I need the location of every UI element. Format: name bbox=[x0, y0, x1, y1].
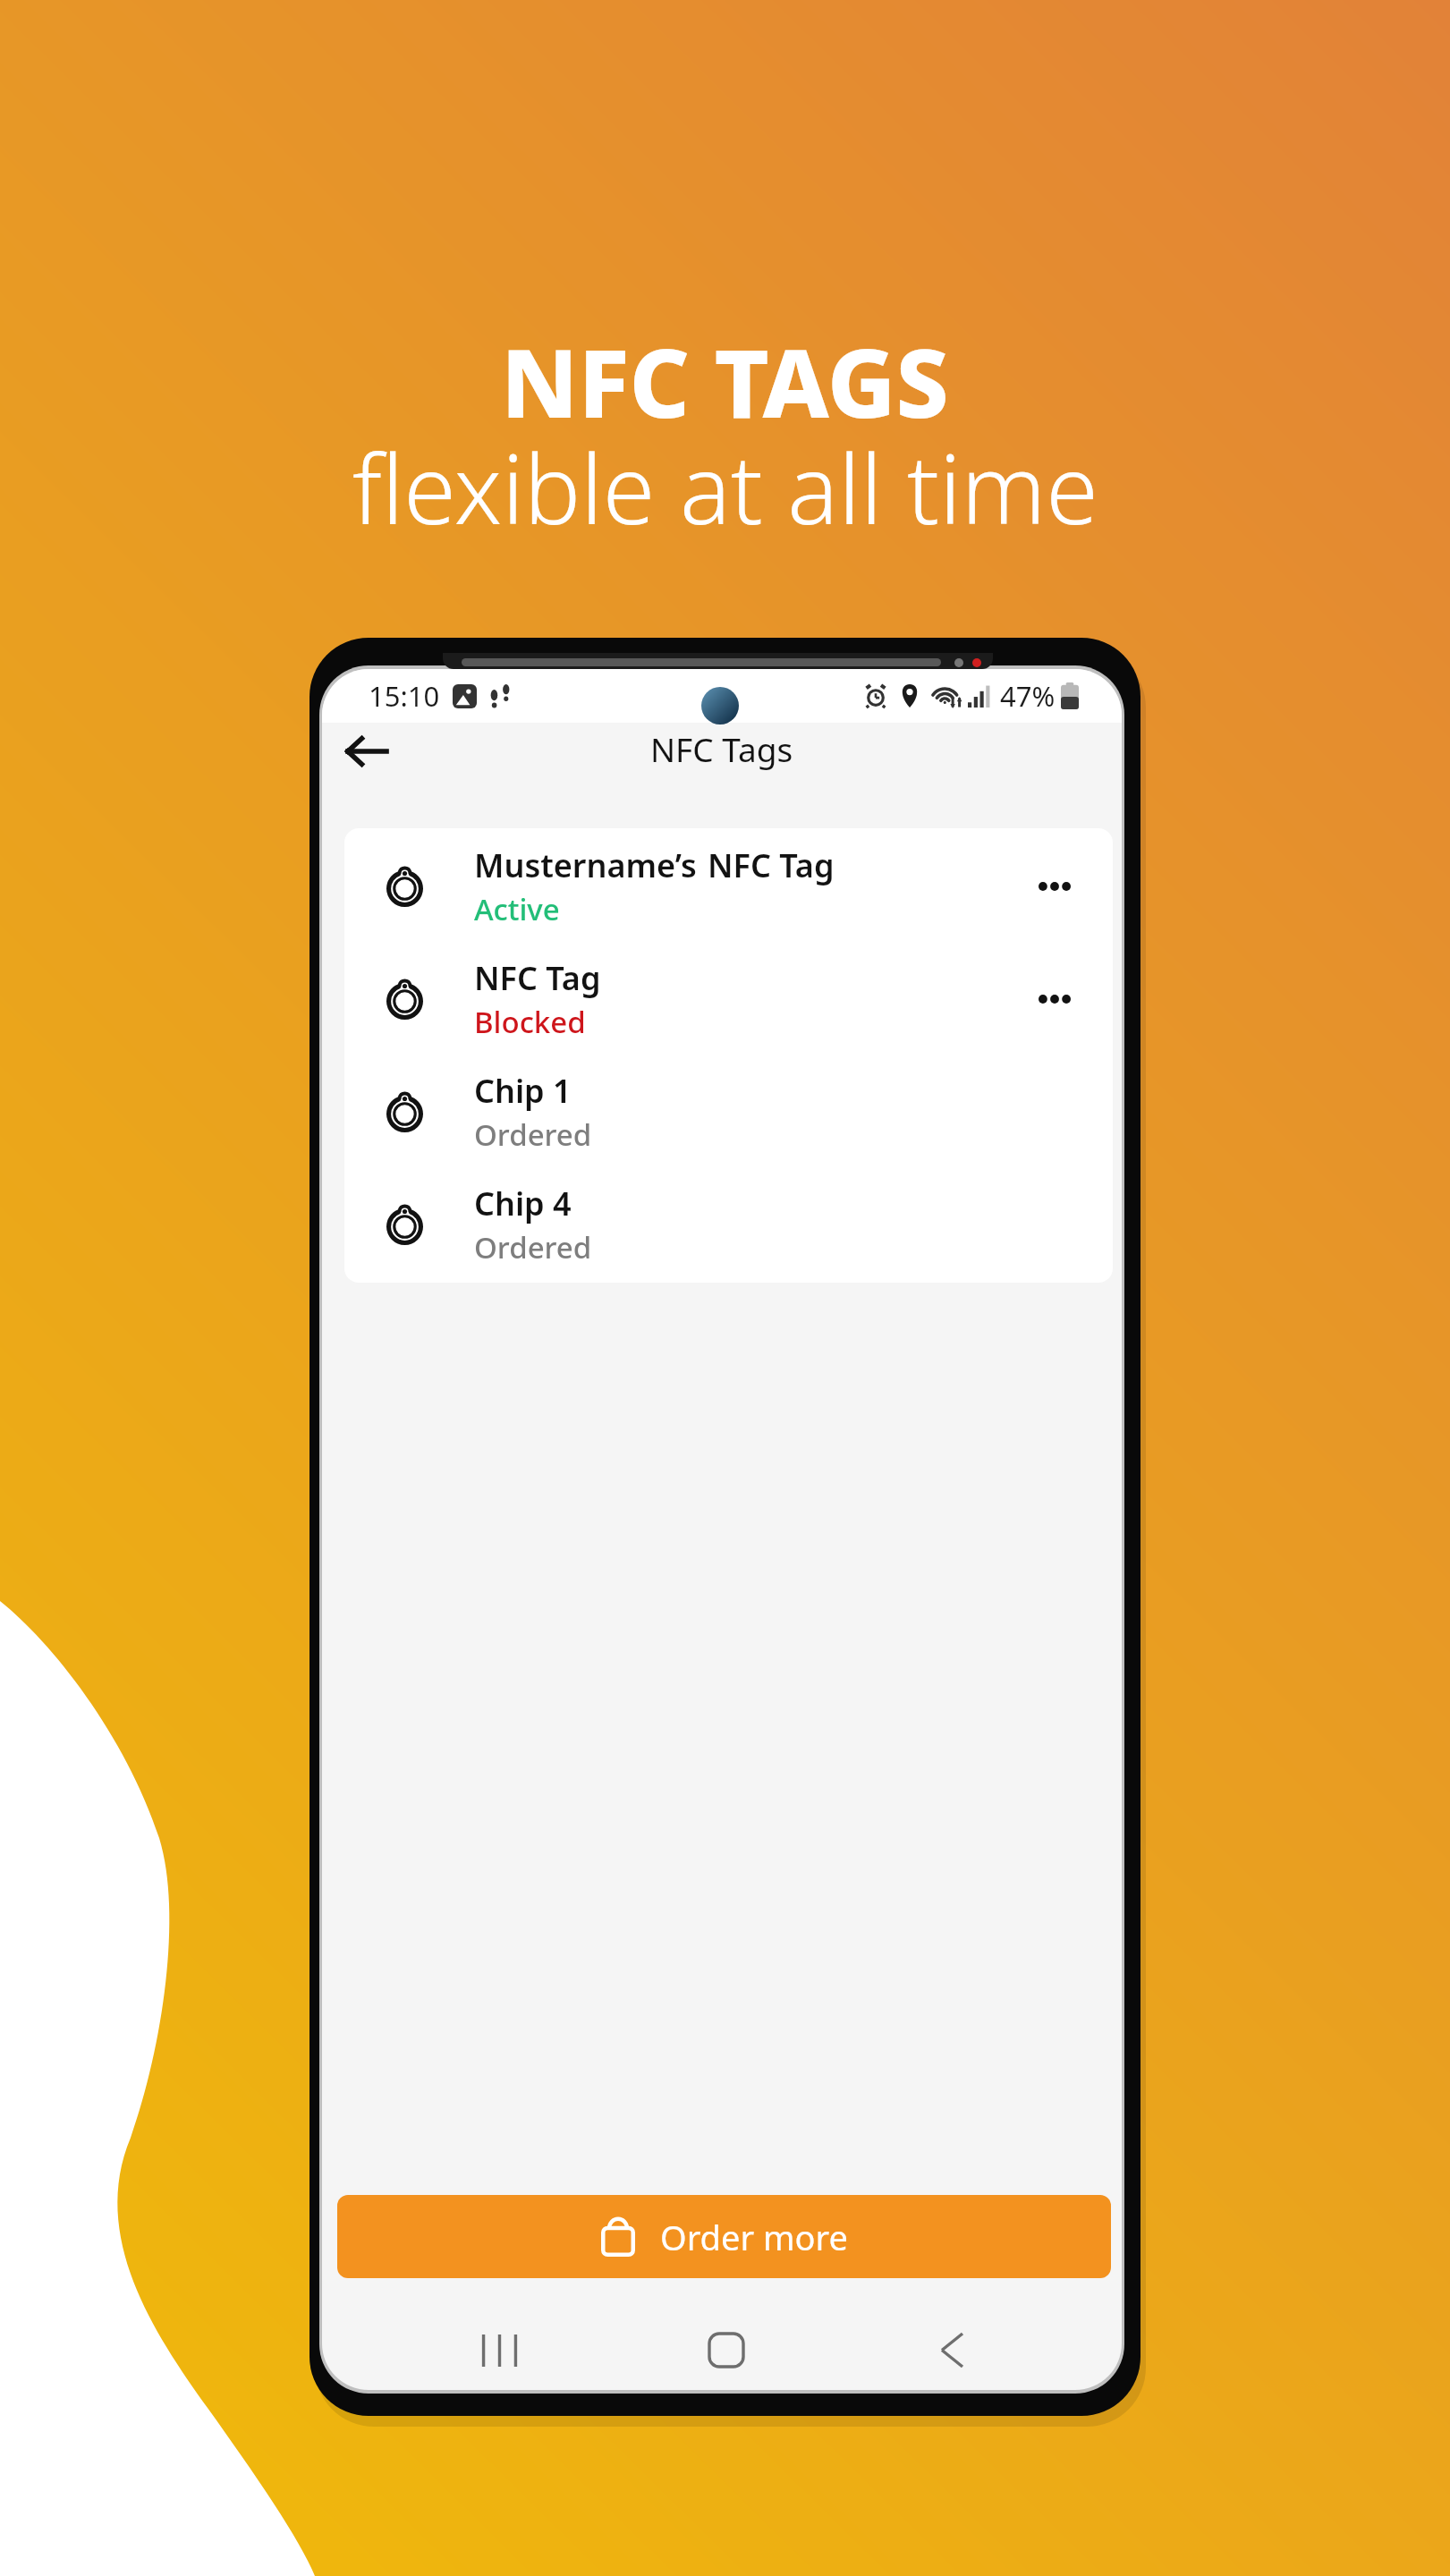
staticText: Ordered bbox=[474, 1227, 592, 1267]
button[interactable]: Order more bbox=[337, 2195, 1111, 2278]
button[interactable]: Chip 4 bbox=[344, 1168, 1113, 1281]
staticText: Chip 1 bbox=[474, 1069, 572, 1113]
staticText: Order more bbox=[660, 2214, 848, 2260]
staticText: Active bbox=[474, 889, 560, 929]
staticText: flexible at all time bbox=[352, 423, 1098, 552]
staticText: 47% bbox=[1000, 677, 1056, 715]
button[interactable]: Home bbox=[673, 2296, 780, 2390]
button[interactable]: More options bbox=[1027, 859, 1082, 914]
button[interactable]: Recents bbox=[445, 2296, 553, 2390]
button[interactable]: Mustername’s bbox=[344, 830, 1113, 943]
button[interactable]: Back bbox=[338, 723, 395, 780]
button[interactable]: More options bbox=[1027, 971, 1082, 1027]
staticText: Mustername’s bbox=[474, 843, 697, 887]
staticText: NFC Tags bbox=[650, 726, 793, 771]
staticText: Ordered bbox=[474, 1114, 592, 1155]
button[interactable]: Chip 1 bbox=[344, 1055, 1113, 1168]
button[interactable]: Back bbox=[898, 2296, 1005, 2390]
staticText: NFC Tag bbox=[474, 956, 601, 1000]
staticText: Chip 4 bbox=[474, 1182, 572, 1225]
button[interactable]: NFC Tag bbox=[344, 943, 1113, 1055]
staticText: NFC Tag bbox=[708, 843, 835, 887]
staticText: NFC TAGS bbox=[501, 318, 949, 445]
staticText: 15:10 bbox=[369, 677, 440, 715]
staticText: Blocked bbox=[474, 1002, 586, 1042]
